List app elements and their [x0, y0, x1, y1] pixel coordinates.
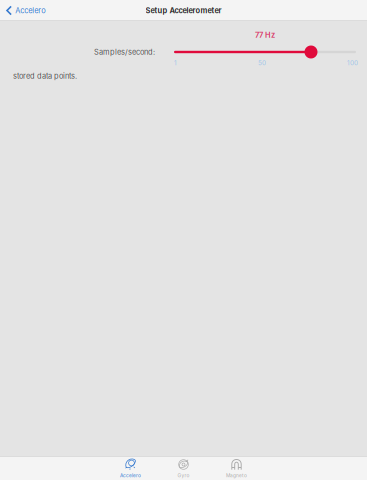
- staticText: 100: [347, 59, 358, 67]
- staticText: Magneto: [226, 473, 247, 478]
- staticText: Accelero: [15, 6, 45, 15]
- staticText: 77 Hz: [255, 30, 275, 39]
- staticText: stored data points.: [13, 71, 77, 80]
- button[interactable]: Accelero: [0, 0, 51, 21]
- button[interactable]: Gyro: [162, 456, 205, 480]
- staticText: Accelero: [120, 473, 141, 478]
- staticText: Samples/second:: [94, 47, 155, 56]
- staticText: Gyro: [177, 473, 189, 478]
- staticText: 1: [174, 59, 177, 67]
- button[interactable]: Magneto: [215, 456, 258, 480]
- staticText: 50: [258, 59, 266, 67]
- button[interactable]: Accelero: [109, 456, 152, 480]
- staticText: Setup Accelerometer: [145, 6, 221, 15]
